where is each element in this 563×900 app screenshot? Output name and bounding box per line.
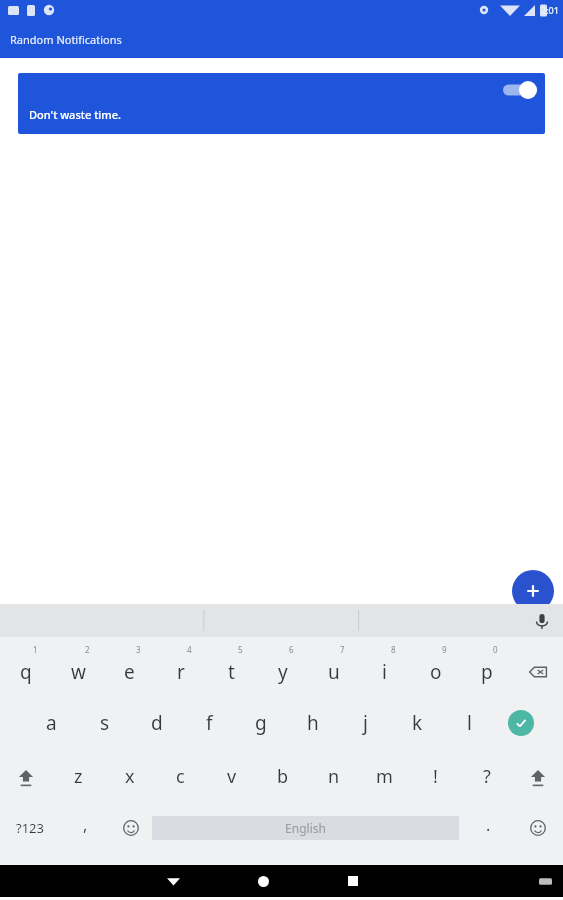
button[interactable]: Don't waste time. xyxy=(18,73,545,134)
button[interactable]: n xyxy=(308,750,359,803)
button[interactable]: 4 xyxy=(155,637,206,696)
button[interactable]: 1 xyxy=(0,637,52,696)
button[interactable]: z xyxy=(52,750,104,803)
button[interactable]: Switch keyboard xyxy=(527,865,563,897)
button[interactable]: g xyxy=(235,696,287,750)
button[interactable]: d xyxy=(131,696,183,750)
staticText: m xyxy=(376,764,393,789)
staticText: l xyxy=(467,710,472,736)
staticText: . xyxy=(486,814,491,836)
staticText: i xyxy=(382,659,387,685)
staticText: d xyxy=(151,710,163,736)
button[interactable]: Shift xyxy=(512,750,563,803)
button[interactable]: a xyxy=(25,696,78,750)
button[interactable]: , xyxy=(60,803,110,853)
staticText: 9 xyxy=(442,644,447,655)
staticText: w xyxy=(71,659,86,685)
staticText: a xyxy=(46,710,57,736)
button[interactable]: . xyxy=(463,803,513,853)
staticText: u xyxy=(328,659,340,685)
staticText: k xyxy=(412,710,423,736)
button[interactable]: m xyxy=(359,750,410,803)
staticText: g xyxy=(255,710,267,736)
staticText: ! xyxy=(433,764,438,789)
button[interactable]: Add notification xyxy=(512,570,554,612)
staticText: 5 xyxy=(238,644,243,655)
button[interactable]: Emoji picker xyxy=(513,803,563,853)
staticText: f xyxy=(206,710,213,736)
button[interactable]: l xyxy=(443,696,495,750)
button[interactable]: k xyxy=(391,696,443,750)
staticText: q xyxy=(20,659,32,685)
button[interactable]: Back xyxy=(128,865,218,897)
button[interactable]: Toggle notification xyxy=(503,81,537,99)
staticText: 1 xyxy=(33,644,38,655)
button[interactable]: f xyxy=(183,696,235,750)
button[interactable]: x xyxy=(104,750,155,803)
button[interactable]: 2 xyxy=(52,637,104,696)
staticText: Random Notifications xyxy=(10,32,122,47)
staticText: j xyxy=(363,710,368,736)
button[interactable]: Recent apps xyxy=(308,865,398,897)
staticText: Don't waste time. xyxy=(29,107,122,122)
staticText: ? xyxy=(483,764,491,789)
staticText: c xyxy=(176,764,185,789)
button[interactable]: Shift xyxy=(0,750,52,803)
staticText: , xyxy=(83,814,88,836)
button[interactable]: Enter xyxy=(495,696,547,750)
button[interactable]: ! xyxy=(410,750,461,803)
button[interactable]: 5 xyxy=(206,637,257,696)
button[interactable]: Backspace xyxy=(512,637,563,696)
staticText: b xyxy=(277,764,289,789)
staticText: t xyxy=(228,659,235,685)
button[interactable]: English xyxy=(152,816,459,840)
staticText: English xyxy=(285,820,326,836)
staticText: r xyxy=(177,659,185,685)
staticText: o xyxy=(430,659,442,685)
button[interactable]: ? xyxy=(461,750,512,803)
button[interactable]: v xyxy=(206,750,257,803)
staticText: 4 xyxy=(187,644,192,655)
button[interactable]: Emoji xyxy=(110,803,152,853)
staticText: s xyxy=(100,710,110,736)
button[interactable]: h xyxy=(287,696,339,750)
staticText: 7 xyxy=(340,644,345,655)
button[interactable]: s xyxy=(78,696,131,750)
button[interactable]: c xyxy=(155,750,206,803)
staticText: 6 xyxy=(289,644,294,655)
button[interactable]: Home xyxy=(218,865,308,897)
staticText: n xyxy=(328,764,340,789)
staticText: v xyxy=(227,764,237,789)
button[interactable]: 9 xyxy=(410,637,461,696)
button[interactable]: 8 xyxy=(359,637,410,696)
button[interactable]: 3 xyxy=(104,637,155,696)
button[interactable]: b xyxy=(257,750,308,803)
staticText: 2:01 xyxy=(541,4,559,16)
button[interactable]: 0 xyxy=(461,637,512,696)
staticText: 2 xyxy=(85,644,90,655)
button[interactable]: 7 xyxy=(308,637,359,696)
staticText: z xyxy=(74,764,83,789)
staticText: x xyxy=(125,764,135,789)
staticText: ?123 xyxy=(16,819,44,837)
staticText: 8 xyxy=(391,644,396,655)
staticText: p xyxy=(481,659,493,685)
button[interactable]: j xyxy=(339,696,391,750)
staticText: e xyxy=(124,659,135,685)
staticText: y xyxy=(278,659,288,685)
button[interactable]: Voice input xyxy=(531,610,553,632)
button[interactable]: 6 xyxy=(257,637,308,696)
button[interactable]: ?123 xyxy=(0,803,60,853)
staticText: 0 xyxy=(493,644,498,655)
staticText: h xyxy=(307,710,319,736)
staticText: 3 xyxy=(136,644,141,655)
